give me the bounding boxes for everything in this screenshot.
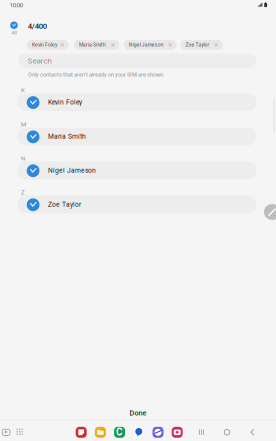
button[interactable]: Messages bbox=[133, 427, 144, 438]
staticText: Kevin Foley bbox=[48, 98, 82, 106]
staticText: Done bbox=[129, 409, 146, 417]
button[interactable]: Kevin Foley bbox=[27, 40, 69, 50]
button[interactable]: Back bbox=[251, 429, 254, 435]
button[interactable]: Kevin Foley bbox=[17, 93, 257, 111]
button[interactable]: Zoe Taylor bbox=[180, 40, 223, 50]
button[interactable]: My Files bbox=[95, 427, 106, 438]
staticText: Zoe Taylor bbox=[48, 200, 81, 208]
button[interactable]: DeX mode bbox=[2, 429, 10, 436]
button[interactable]: Internet bbox=[152, 427, 163, 438]
button[interactable]: Done bbox=[0, 405, 276, 421]
staticText: 4/400 bbox=[28, 22, 47, 31]
staticText: 10:00 bbox=[10, 2, 23, 9]
staticText: Nigel Jameson bbox=[48, 166, 96, 174]
staticText: Maria Smith bbox=[79, 42, 106, 48]
staticText: M bbox=[21, 121, 26, 128]
button[interactable]: Search bbox=[18, 54, 256, 68]
staticText: N bbox=[21, 155, 25, 162]
button[interactable]: Maria Smith bbox=[74, 40, 119, 50]
button[interactable]: Zoe Taylor bbox=[17, 195, 257, 213]
button[interactable]: All apps bbox=[17, 429, 23, 435]
button[interactable]: Maria Smith bbox=[17, 127, 257, 145]
button[interactable]: Home bbox=[224, 429, 230, 435]
button[interactable]: Camera bbox=[172, 427, 183, 438]
button[interactable]: Calendar bbox=[114, 427, 125, 438]
staticText: C bbox=[116, 426, 123, 438]
staticText: Kevin Foley bbox=[32, 42, 57, 48]
staticText: Nigel Jameson bbox=[129, 42, 164, 48]
button[interactable]: Nigel Jameson bbox=[124, 40, 177, 50]
button[interactable]: Scroll bbox=[264, 204, 276, 220]
staticText: Search bbox=[28, 56, 52, 66]
button[interactable]: Notes bbox=[76, 427, 87, 438]
staticText: All bbox=[12, 30, 17, 36]
button[interactable]: Recent apps bbox=[199, 429, 204, 435]
staticText: Maria Smith bbox=[48, 132, 86, 140]
button[interactable]: Nigel Jameson bbox=[17, 161, 257, 179]
staticText: K bbox=[21, 87, 25, 94]
staticText: Zoe Taylor bbox=[185, 42, 209, 48]
staticText: Z bbox=[21, 189, 25, 196]
staticText: Only contacts that aren't already on you… bbox=[28, 71, 164, 78]
button[interactable]: Select all bbox=[10, 19, 18, 31]
